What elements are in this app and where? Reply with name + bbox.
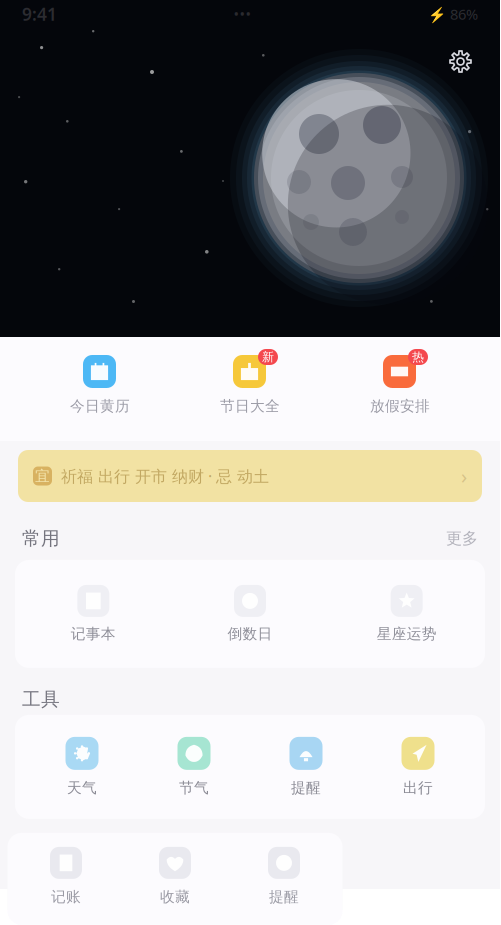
staticText: 9:41	[22, 2, 57, 25]
button[interactable]: 热	[325, 342, 475, 436]
staticText: 祈福 出行 开市 纳财 · 忌 动土	[61, 465, 269, 487]
button[interactable]: 记事本	[15, 585, 172, 643]
staticText: ⚡ 86%	[428, 4, 478, 24]
staticText: 收藏	[160, 888, 190, 906]
staticText: 记事本	[71, 625, 116, 643]
staticText: 新	[262, 350, 274, 364]
staticText: 节日大全	[220, 397, 280, 415]
button[interactable]: 星座运势	[328, 585, 485, 643]
button[interactable]: Settings	[438, 39, 483, 84]
staticText: 星座运势	[377, 625, 437, 643]
staticText: ›	[461, 463, 467, 489]
staticText: 出行	[403, 779, 433, 797]
button[interactable]: 出行	[362, 729, 474, 805]
staticText: •••	[233, 4, 251, 24]
button[interactable]: 天气	[26, 729, 138, 805]
staticText: 记账	[51, 888, 81, 906]
button[interactable]: 宜	[18, 450, 482, 502]
staticText: 常用	[22, 527, 60, 550]
staticText: 热	[412, 350, 424, 364]
button[interactable]: 新	[175, 342, 325, 436]
staticText: 今日黄历	[70, 397, 130, 415]
button[interactable]: 倒数日	[172, 585, 328, 643]
button[interactable]: 收藏	[120, 847, 229, 906]
button[interactable]: 记账	[11, 847, 120, 906]
staticText: 提醒	[269, 888, 299, 906]
staticText: 提醒	[291, 779, 321, 797]
button[interactable]: 今日黄历	[25, 342, 175, 436]
staticText: 宜	[35, 467, 50, 485]
staticText: 天气	[67, 779, 97, 797]
staticText: 工具	[22, 688, 60, 711]
staticText: 放假安排	[370, 397, 430, 415]
button[interactable]: 提醒	[229, 847, 338, 906]
staticText: 倒数日	[227, 625, 272, 643]
button[interactable]: 节气	[138, 729, 250, 805]
button[interactable]: 提醒	[250, 729, 362, 805]
staticText: 更多	[446, 529, 478, 548]
staticText: 节气	[179, 779, 209, 797]
